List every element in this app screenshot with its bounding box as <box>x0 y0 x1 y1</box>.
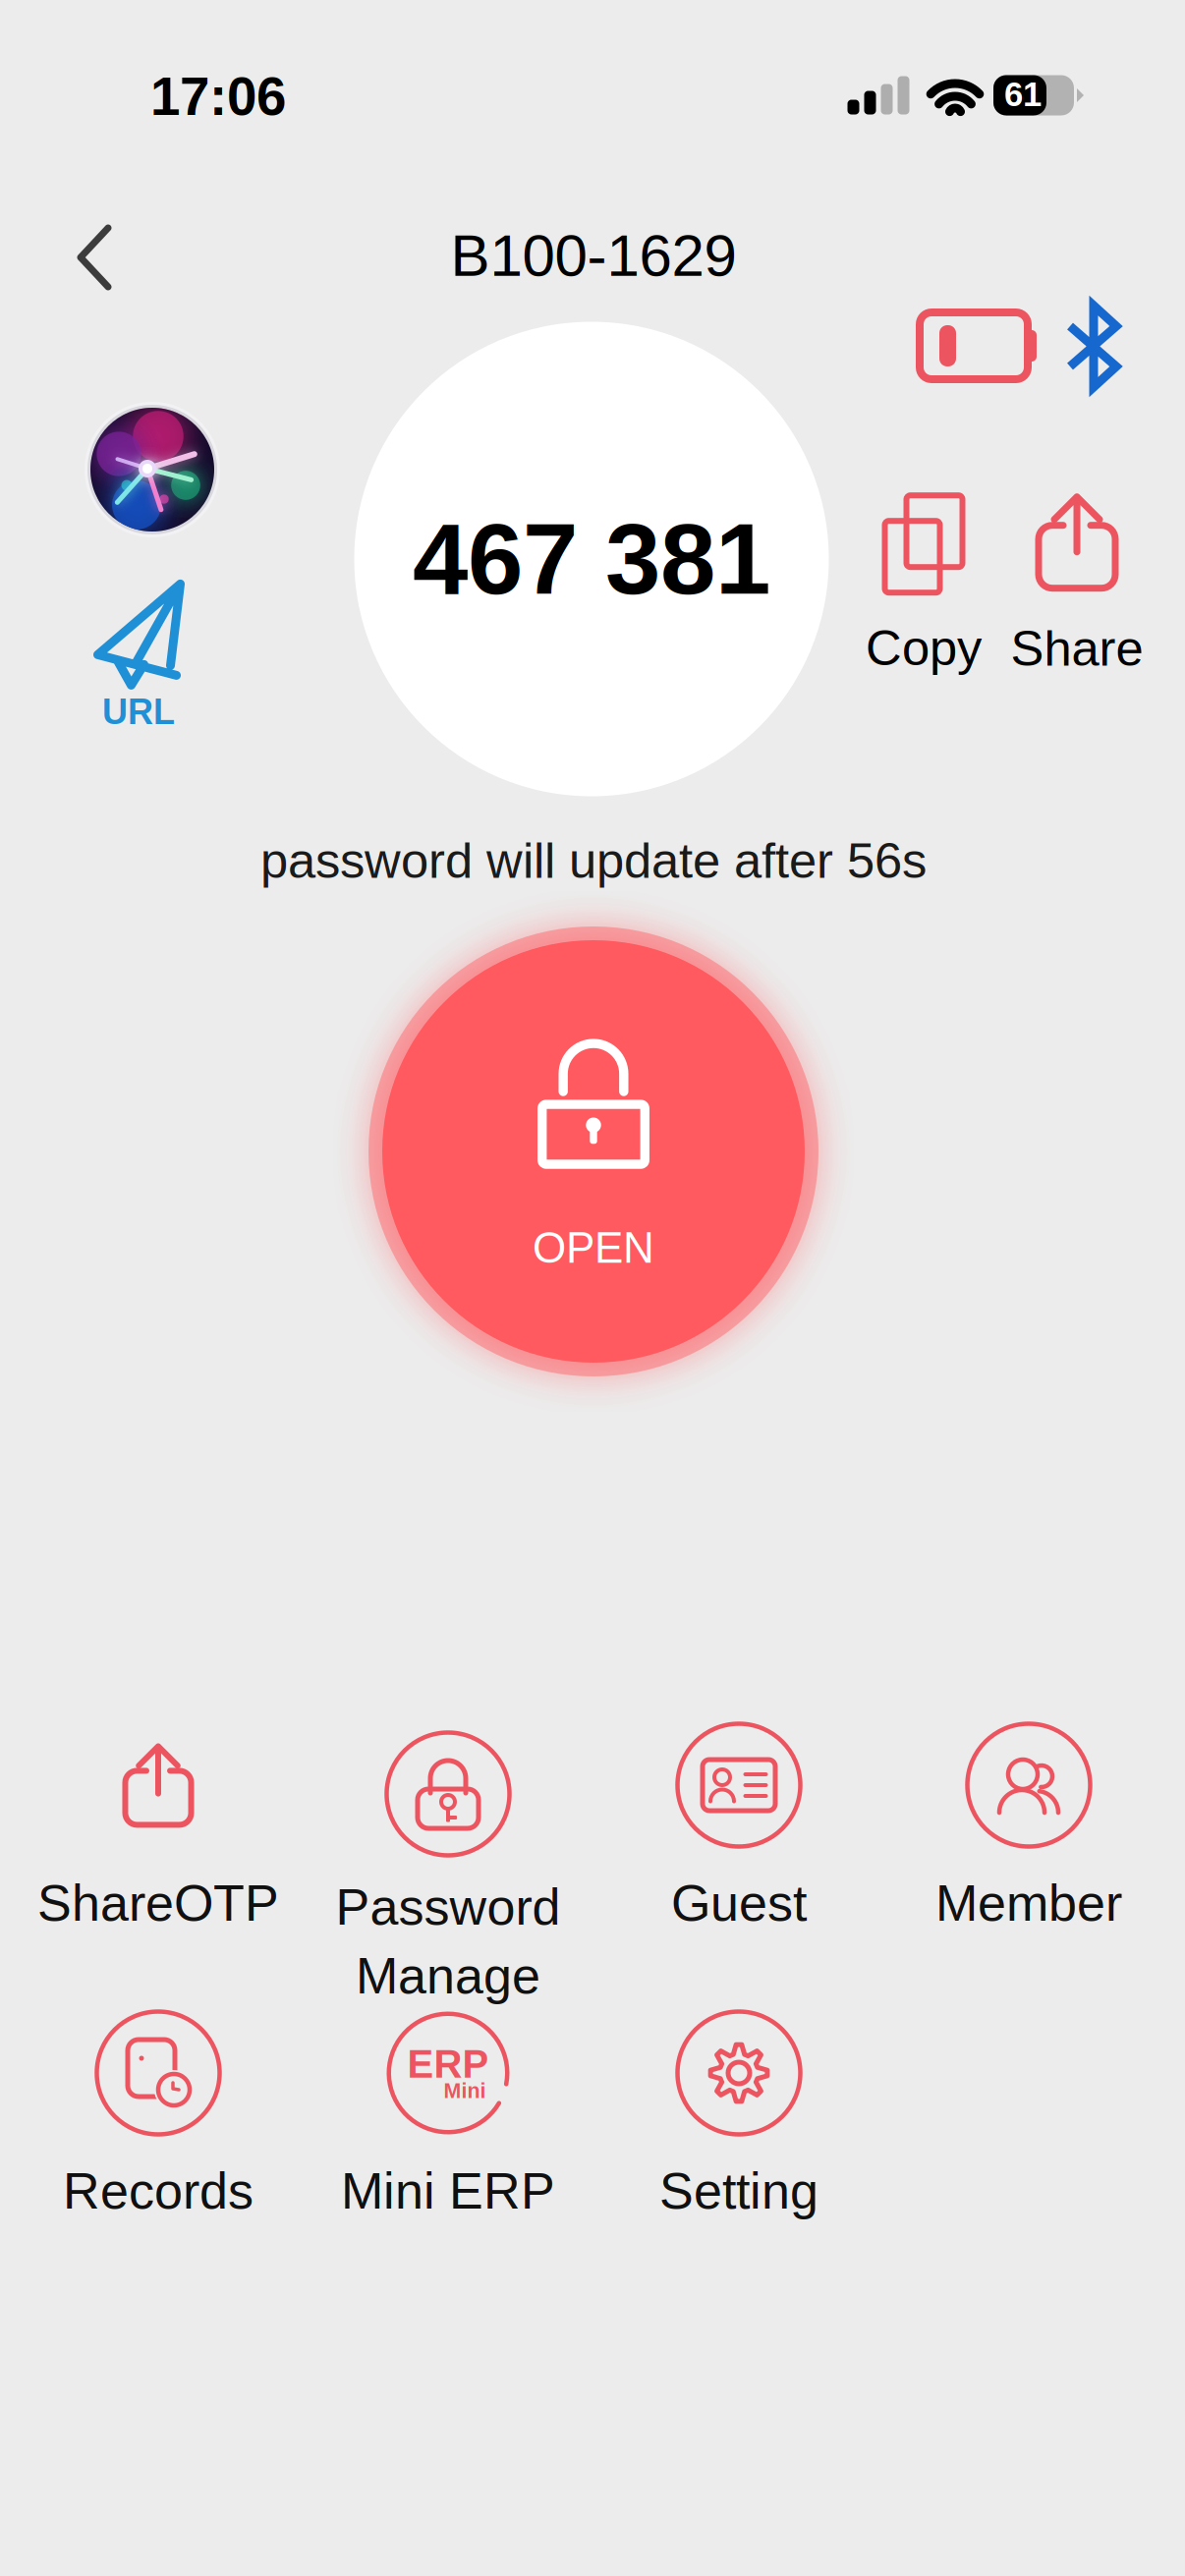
button[interactable]: ShareOTP <box>16 1716 301 1952</box>
staticText: ShareOTP <box>37 1875 279 1932</box>
staticText: password will update after 56s <box>260 833 927 888</box>
button[interactable]: Password <box>306 1725 591 2020</box>
staticText: B100-1629 <box>451 223 736 288</box>
staticText: Share <box>1011 621 1143 676</box>
button[interactable]: Copy <box>840 492 1007 679</box>
button[interactable]: OPEN <box>348 906 839 1397</box>
button[interactable]: Records <box>16 2004 301 2240</box>
button[interactable]: URL <box>55 569 222 741</box>
staticText: Manage <box>356 1947 540 2004</box>
staticText: 17:06 <box>150 66 286 126</box>
button[interactable]: Member <box>886 1716 1171 1952</box>
staticText: Mini ERP <box>341 2162 555 2219</box>
staticText: 467 381 <box>413 503 770 615</box>
staticText: OPEN <box>533 1224 654 1272</box>
button[interactable]: Share <box>988 490 1165 677</box>
staticText: Copy <box>866 620 982 676</box>
button[interactable]: Guest <box>596 1716 881 1952</box>
staticText: Records <box>63 2162 254 2219</box>
staticText: 61 <box>1004 75 1042 113</box>
staticText: Setting <box>659 2162 818 2219</box>
staticText: Mini <box>444 2079 486 2102</box>
staticText: Guest <box>671 1875 807 1932</box>
button[interactable]: Setting <box>596 2004 881 2240</box>
button[interactable]: Siri <box>74 391 231 548</box>
staticText: Member <box>935 1875 1122 1932</box>
staticText: ERP <box>407 2042 489 2086</box>
button[interactable]: Back <box>35 198 153 316</box>
button[interactable]: ERP <box>306 2004 591 2240</box>
staticText: Password <box>336 1878 561 1935</box>
staticText: URL <box>102 692 175 732</box>
